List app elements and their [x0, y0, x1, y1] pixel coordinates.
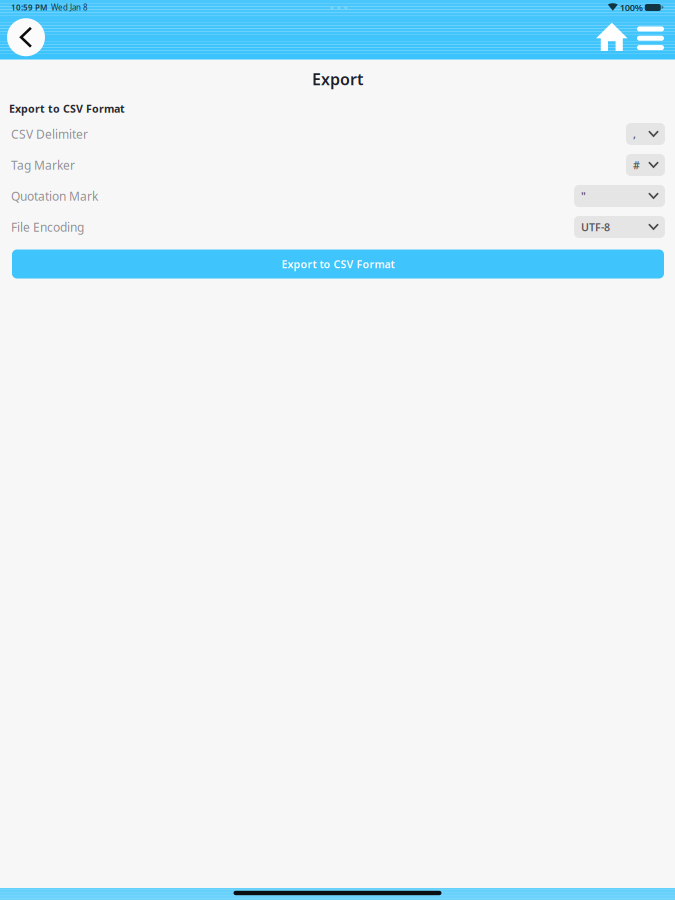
staticText: Quotation Mark	[11, 188, 98, 204]
button[interactable]: Home	[595, 17, 629, 57]
button[interactable]: Menu	[637, 17, 664, 57]
staticText: Export	[312, 68, 363, 90]
staticText: CSV Delimiter	[11, 126, 88, 142]
staticText: Export to CSV Format	[9, 101, 125, 116]
staticText: "	[581, 189, 586, 203]
staticText: ,	[633, 127, 636, 141]
button[interactable]: "	[574, 185, 665, 207]
button[interactable]: Back	[7, 18, 45, 56]
staticText: Export to CSV Format	[281, 257, 394, 271]
staticText: File Encoding	[11, 219, 84, 235]
staticText: #	[633, 158, 640, 172]
staticText: Wed Jan 8	[47, 2, 88, 13]
button[interactable]: ,	[626, 123, 665, 145]
staticText: UTF-8	[581, 220, 610, 234]
button[interactable]: #	[626, 154, 665, 176]
button[interactable]: UTF-8	[574, 216, 665, 238]
button[interactable]: Export to CSV Format	[12, 249, 664, 278]
staticText: 100%	[618, 1, 645, 14]
staticText: 10:59 PM	[11, 2, 47, 13]
staticText: Tag Marker	[11, 157, 75, 173]
